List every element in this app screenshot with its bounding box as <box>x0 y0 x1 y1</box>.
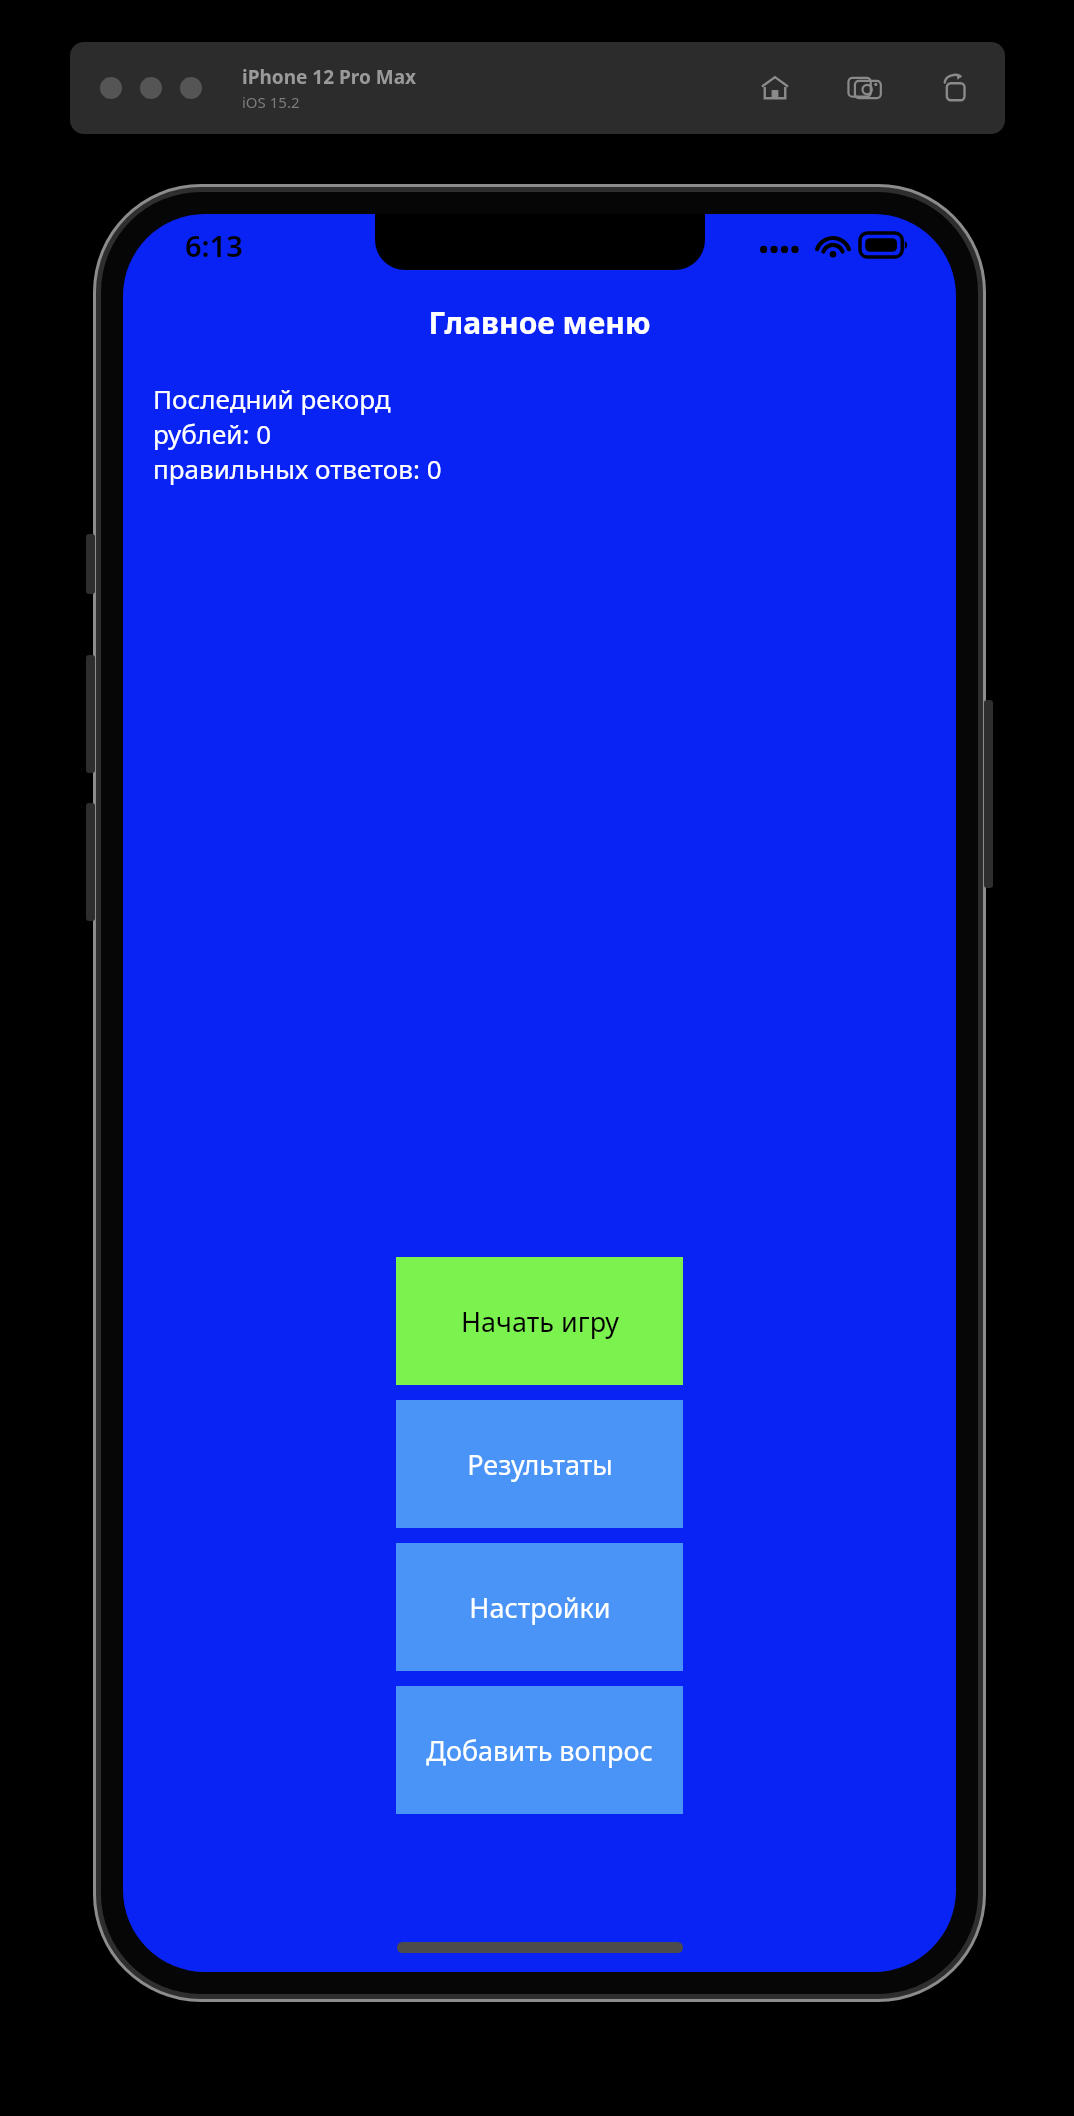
staticText: рублей: 0 <box>153 416 272 451</box>
staticText: Последний рекорд <box>153 381 391 416</box>
button[interactable] <box>140 77 162 99</box>
button[interactable]: Настройки <box>396 1543 683 1671</box>
staticText: iPhone 12 Pro Max <box>242 64 417 90</box>
button[interactable]: Результаты <box>396 1400 683 1528</box>
staticText: iOS 15.2 <box>242 92 300 112</box>
button[interactable]: Добавить вопрос <box>396 1686 683 1814</box>
staticText: Начать игру <box>461 1303 619 1340</box>
staticText: Настройки <box>469 1589 611 1626</box>
button[interactable] <box>100 77 122 99</box>
staticText: 6:13 <box>185 226 243 265</box>
button[interactable]: Rotate <box>929 62 981 114</box>
staticText: Главное меню <box>123 302 956 343</box>
button[interactable]: Начать игру <box>396 1257 683 1385</box>
staticText: правильных ответов: 0 <box>153 451 442 486</box>
button[interactable]: Screenshot <box>839 62 891 114</box>
button[interactable]: Home <box>749 62 801 114</box>
button[interactable] <box>180 77 202 99</box>
staticText: Добавить вопрос <box>426 1732 653 1769</box>
staticText: Результаты <box>467 1446 613 1483</box>
